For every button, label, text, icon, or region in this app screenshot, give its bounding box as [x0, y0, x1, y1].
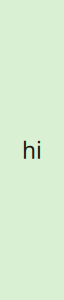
staticText: hi — [22, 135, 42, 165]
